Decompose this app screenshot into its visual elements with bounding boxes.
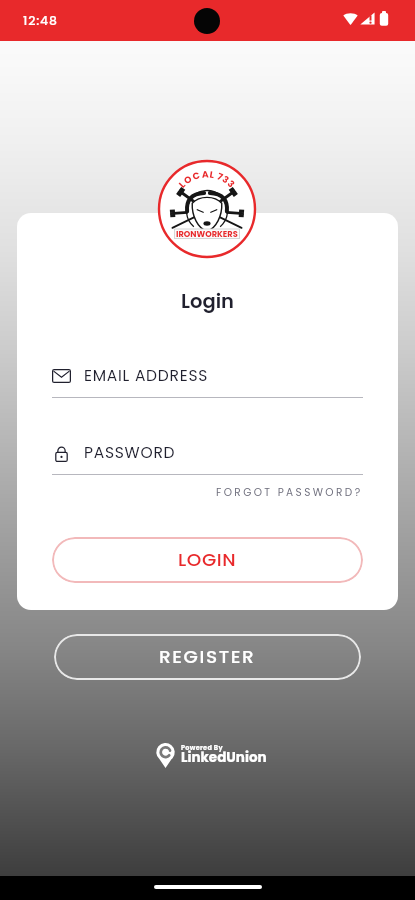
staticText: 12:48 <box>23 12 58 29</box>
staticText: Powered By <box>181 743 223 752</box>
staticText: PASSWORD <box>84 442 176 464</box>
button[interactable]: PASSWORD <box>52 441 363 465</box>
staticText: LinkedUnion <box>181 748 267 767</box>
button[interactable]: LOGIN <box>52 537 363 583</box>
button[interactable]: LinkedUnion <box>155 742 265 770</box>
other: LinkedUnion <box>155 742 176 769</box>
staticText: EMAIL ADDRESS <box>84 365 209 387</box>
staticText: REGISTER <box>159 644 256 670</box>
staticText: FORGOT PASSWORD? <box>216 485 363 500</box>
button[interactable]: REGISTER <box>54 634 361 680</box>
button[interactable]: FORGOT PASSWORD? <box>213 481 363 503</box>
staticText: Login <box>17 288 398 315</box>
staticText: LOGIN <box>178 547 237 573</box>
button[interactable]: EMAIL ADDRESS <box>52 364 363 388</box>
